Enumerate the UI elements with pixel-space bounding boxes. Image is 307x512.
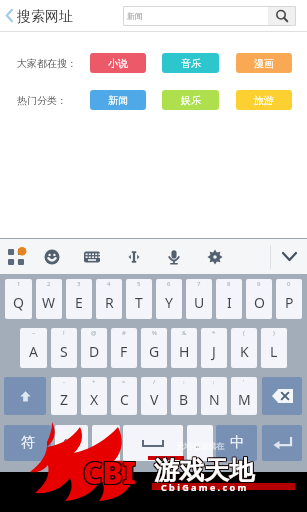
staticText: K	[240, 342, 249, 361]
button[interactable]: 5	[126, 279, 152, 319]
staticText: CBI	[83, 451, 136, 492]
button[interactable]: :	[171, 377, 197, 415]
staticText: F	[120, 342, 128, 361]
staticText: 4	[107, 280, 111, 288]
button[interactable]: Enter	[262, 425, 302, 461]
button[interactable]: 8	[216, 279, 242, 319]
button[interactable]: *	[201, 328, 227, 368]
button[interactable]: 6	[156, 279, 182, 319]
staticText: 游戏天地	[155, 454, 255, 485]
button[interactable]: 。	[187, 425, 213, 461]
staticText: Z	[60, 390, 69, 409]
button[interactable]: 1	[5, 279, 32, 319]
button[interactable]: 小说	[90, 53, 146, 73]
staticText: 游戏天地	[155, 455, 255, 486]
button[interactable]: 漫画	[236, 53, 292, 73]
staticText: 123	[63, 436, 81, 450]
staticText: ，	[101, 436, 112, 450]
button[interactable]: )	[261, 328, 287, 368]
button[interactable]: 2	[36, 279, 62, 319]
staticText: CBI	[83, 452, 136, 493]
button[interactable]: -	[51, 377, 77, 415]
button[interactable]: Search	[268, 6, 296, 26]
staticText: J	[212, 342, 216, 361]
staticText: C b i G a m e . c o m	[161, 481, 247, 493]
staticText: B	[179, 390, 189, 409]
button[interactable]: 中	[216, 425, 257, 461]
button[interactable]: 符	[4, 425, 51, 461]
button[interactable]: %	[141, 328, 167, 368]
button[interactable]: ，	[92, 425, 120, 461]
button[interactable]: Voice input	[154, 239, 194, 274]
button[interactable]: Shift	[4, 377, 46, 415]
staticText: 音乐	[181, 57, 201, 70]
staticText: &	[182, 329, 187, 337]
button[interactable]: 娱乐	[162, 90, 219, 110]
staticText: !	[63, 329, 65, 337]
button[interactable]: /	[141, 377, 167, 415]
staticText: 游戏天地	[154, 454, 254, 485]
staticText: 游戏天地	[153, 456, 253, 487]
staticText: CBI	[82, 451, 135, 492]
button[interactable]: Move cursor	[113, 239, 154, 274]
staticText: T	[135, 293, 143, 312]
staticText: 大家都在搜：	[17, 57, 77, 70]
button[interactable]: Keyboard layout	[71, 239, 113, 274]
button[interactable]: 123	[55, 425, 88, 461]
staticText: O	[254, 293, 265, 312]
button[interactable]: (	[231, 328, 257, 368]
button[interactable]: 新闻	[90, 90, 146, 110]
staticText: #	[122, 329, 126, 337]
staticText: 游戏天地	[154, 456, 254, 487]
staticText: 游戏天地	[153, 455, 253, 486]
staticText: '	[243, 378, 245, 386]
staticText: )	[273, 329, 275, 337]
button[interactable]: 3	[66, 279, 92, 319]
staticText: /	[153, 378, 156, 386]
button[interactable]: '	[231, 377, 257, 415]
button[interactable]: 7	[186, 279, 212, 319]
staticText: @	[91, 329, 97, 337]
staticText: *	[212, 329, 216, 337]
staticText: :	[183, 378, 185, 386]
staticText: CBI	[82, 453, 135, 494]
button[interactable]: Hide keyboard	[271, 239, 307, 274]
staticText: 2	[47, 280, 51, 288]
staticText: 6	[167, 280, 171, 288]
button[interactable]: +	[81, 377, 107, 415]
staticText: 搜索网址	[17, 8, 73, 26]
staticText: N	[209, 390, 220, 409]
button[interactable]: 0	[276, 279, 302, 319]
staticText: W	[42, 293, 56, 312]
staticText: 热门分类：	[17, 94, 67, 107]
staticText: 符	[21, 434, 35, 452]
staticText: M	[238, 390, 251, 409]
button[interactable]: Settings	[194, 239, 235, 274]
button[interactable]: Backspace	[262, 377, 302, 415]
button[interactable]: &	[171, 328, 197, 368]
button[interactable]: 9	[246, 279, 272, 319]
button[interactable]: 搜索网址	[0, 0, 79, 31]
button[interactable]: 4	[96, 279, 122, 319]
button[interactable]: !	[51, 328, 77, 368]
button[interactable]: Emoji	[32, 239, 71, 274]
staticText: (	[243, 329, 245, 337]
button[interactable]: Apps	[0, 239, 32, 274]
button[interactable]: =	[111, 377, 137, 415]
staticText: 漫画	[254, 57, 274, 70]
staticText: G	[149, 342, 160, 361]
staticText: X	[90, 390, 99, 409]
staticText: 游戏天地	[153, 454, 253, 485]
button[interactable]: @	[81, 328, 107, 368]
staticText: D	[89, 342, 100, 361]
staticText: 新闻	[127, 11, 143, 21]
button[interactable]: 音乐	[162, 53, 219, 73]
staticText: ~	[32, 329, 36, 337]
button[interactable]: ~	[20, 328, 47, 368]
button[interactable]: ;	[201, 377, 227, 415]
staticText: 游戏天地	[154, 455, 254, 486]
button[interactable]: #	[111, 328, 137, 368]
staticText: H	[179, 342, 190, 361]
button[interactable]: Space	[123, 425, 183, 461]
button[interactable]: 旅游	[236, 90, 292, 110]
